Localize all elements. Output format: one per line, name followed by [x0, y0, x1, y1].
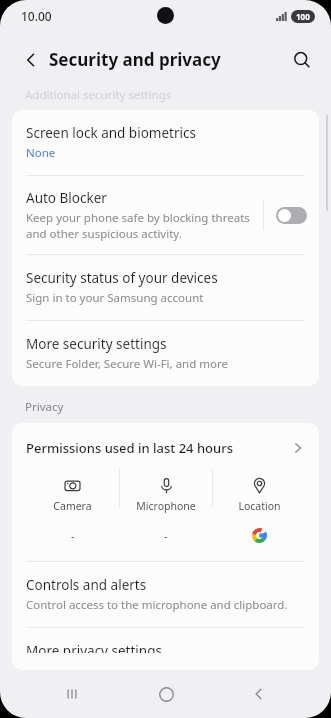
button[interactable]: Search [285, 43, 319, 77]
staticText: - [71, 528, 75, 543]
staticText: Screen lock and biometrics [26, 124, 196, 142]
staticText: Controls and alerts [26, 576, 147, 594]
button[interactable]: Auto Blocker [12, 176, 319, 254]
button[interactable]: Camera [26, 469, 119, 543]
button[interactable]: Security status of your devices [12, 255, 319, 320]
button[interactable]: Home [145, 673, 187, 715]
staticText: Privacy [25, 399, 64, 415]
staticText: Auto Blocker [26, 189, 107, 207]
staticText: Security status of your devices [26, 269, 218, 287]
staticText: 100 [296, 11, 310, 22]
staticText: Sign in to your Samsung account [26, 290, 204, 306]
staticText: - [164, 528, 168, 543]
staticText: Additional security settings [25, 87, 172, 103]
button[interactable]: Auto Blocker toggle [276, 207, 307, 224]
button[interactable]: Controls and alerts [12, 562, 319, 627]
button[interactable]: Permissions used in last 24 hours [12, 423, 319, 469]
staticText: None [26, 145, 56, 161]
button[interactable]: More security settings [12, 321, 319, 386]
button[interactable]: Back [14, 43, 48, 77]
staticText: Secure Folder, Secure Wi-Fi, and more [26, 356, 228, 372]
button[interactable]: Screen lock and biometrics [12, 110, 319, 175]
staticText: Security and privacy [49, 48, 221, 71]
button[interactable]: Recents [51, 673, 93, 715]
staticText: Control access to the microphone and cli… [26, 597, 288, 613]
staticText: Camera [53, 499, 92, 513]
button[interactable]: Microphone [120, 469, 212, 543]
staticText: Location [238, 499, 281, 513]
button[interactable]: Location [213, 469, 305, 543]
staticText: 10.00 [21, 8, 52, 24]
staticText: More privacy settings [26, 642, 162, 653]
staticText: Permissions used in last 24 hours [26, 439, 291, 457]
staticText: Microphone [136, 499, 196, 513]
button[interactable]: Back [238, 673, 280, 715]
staticText: Keep your phone safe by blocking threats… [26, 210, 255, 241]
staticText: More security settings [26, 335, 167, 353]
button[interactable]: More privacy settings [12, 628, 319, 670]
